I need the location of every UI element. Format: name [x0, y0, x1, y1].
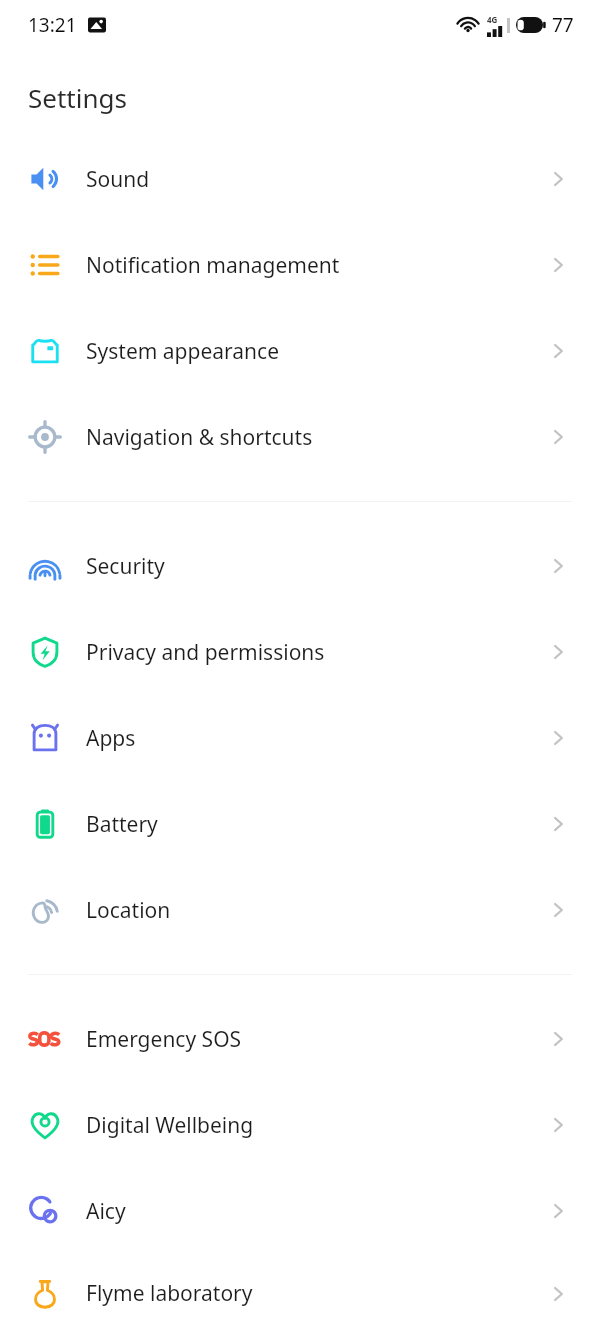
button[interactable]: Emergency SOS: [0, 996, 600, 1082]
staticText: Navigation & shortcuts: [86, 423, 546, 452]
staticText: Apps: [86, 724, 546, 753]
button[interactable]: Location: [0, 867, 600, 953]
staticText: Emergency SOS: [86, 1025, 546, 1054]
staticText: 13:21: [28, 12, 77, 38]
staticText: Location: [86, 896, 546, 925]
staticText: Security: [86, 552, 546, 581]
staticText: Battery: [86, 810, 546, 839]
button[interactable]: Aicy: [0, 1168, 600, 1254]
staticText: Privacy and permissions: [86, 638, 546, 667]
staticText: Notification management: [86, 251, 546, 280]
button[interactable]: Privacy and permissions: [0, 609, 600, 695]
staticText: Digital Wellbeing: [86, 1111, 546, 1140]
button[interactable]: Security: [0, 523, 600, 609]
button[interactable]: Notification management: [0, 222, 600, 308]
staticText: Sound: [86, 165, 546, 194]
button[interactable]: Battery: [0, 781, 600, 867]
button[interactable]: Sound: [0, 136, 600, 222]
button[interactable]: Apps: [0, 695, 600, 781]
staticText: Settings: [28, 80, 127, 115]
staticText: Flyme laboratory: [86, 1279, 546, 1308]
button[interactable]: System appearance: [0, 308, 600, 394]
staticText: 4G: [487, 14, 498, 25]
staticText: 77: [552, 12, 574, 38]
button[interactable]: Navigation & shortcuts: [0, 394, 600, 480]
staticText: Aicy: [86, 1197, 546, 1226]
button[interactable]: Flyme laboratory: [0, 1254, 600, 1333]
button[interactable]: Digital Wellbeing: [0, 1082, 600, 1168]
staticText: System appearance: [86, 337, 546, 366]
